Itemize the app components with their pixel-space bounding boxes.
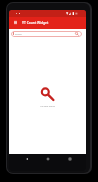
button[interactable]: Open navigation menu — [9, 17, 20, 29]
button[interactable]: Home — [43, 154, 52, 163]
staticText: Search — [15, 33, 22, 36]
button[interactable]: Recent apps — [65, 154, 74, 163]
button[interactable]: Search — [11, 31, 82, 37]
button[interactable]: Back — [22, 154, 31, 163]
staticText: No data found — [40, 105, 55, 108]
staticText: YT Count Widget — [22, 20, 49, 24]
